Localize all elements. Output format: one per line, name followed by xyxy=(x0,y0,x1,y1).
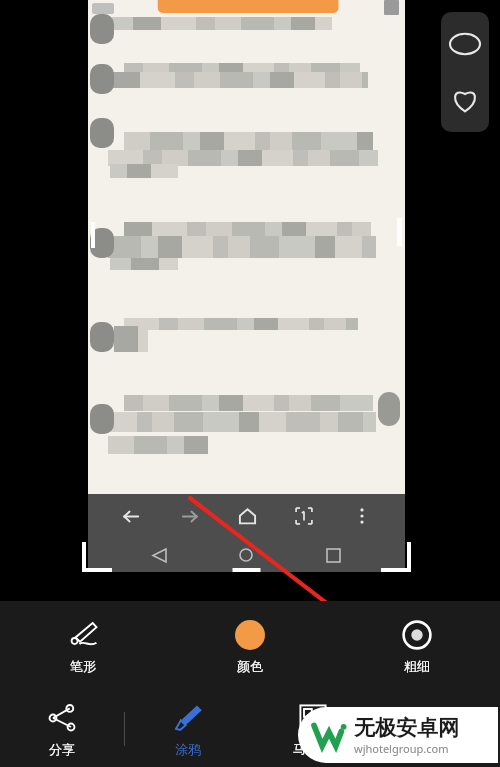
staticText: 笔形 xyxy=(70,658,96,674)
button[interactable]: 笔形 xyxy=(0,601,166,691)
button[interactable]: Back xyxy=(144,540,174,570)
staticText: 分享 xyxy=(49,741,75,757)
button[interactable]: Home xyxy=(232,501,262,531)
button[interactable]: Tabs xyxy=(289,501,319,531)
staticText: 颜色 xyxy=(237,658,263,674)
staticText: wjhotelgroup.com xyxy=(354,741,449,756)
button[interactable]: 涂鸦 xyxy=(125,691,250,767)
staticText: 裁剪 xyxy=(425,741,451,757)
button[interactable]: Shape ellipse xyxy=(443,22,487,66)
button[interactable]: Forward xyxy=(174,501,204,531)
button[interactable]: Home xyxy=(231,540,261,570)
button[interactable]: 马赛克 xyxy=(250,691,375,767)
button[interactable]: 粗细 xyxy=(333,601,500,691)
button[interactable]: Back xyxy=(116,501,146,531)
staticText: 粗细 xyxy=(404,658,430,674)
button[interactable]: 分享 xyxy=(0,691,124,767)
button[interactable]: 裁剪 xyxy=(375,691,500,767)
button[interactable]: Recents xyxy=(318,540,348,570)
staticText: 无极安卓网 xyxy=(354,715,459,741)
staticText: 涂鸦 xyxy=(175,741,201,757)
staticText: 马赛克 xyxy=(293,741,332,757)
button[interactable]: 颜色 xyxy=(166,601,333,691)
button[interactable]: Shape heart xyxy=(443,78,487,122)
button[interactable]: More options xyxy=(347,501,377,531)
